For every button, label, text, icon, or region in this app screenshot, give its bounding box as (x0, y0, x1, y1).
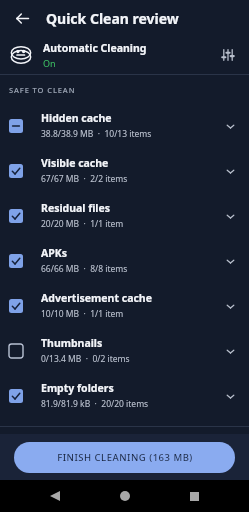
button[interactable]: Expand APKs (219, 250, 241, 272)
staticText: Hidden cache (41, 111, 112, 125)
staticText: 20/20 MB · 1/1 item (41, 218, 124, 230)
button[interactable]: Select Empty folders (0, 373, 249, 418)
button[interactable]: Select Thumbnails (0, 328, 249, 373)
staticText: SAFE TO CLEAN (9, 85, 76, 95)
button[interactable]: Home (111, 482, 139, 510)
button[interactable]: Recents (180, 482, 208, 510)
staticText: On (43, 57, 56, 69)
button[interactable]: Select Empty folders (9, 389, 23, 403)
staticText: Quick Clean review (46, 9, 179, 28)
button[interactable]: Select Advertisement cache (0, 283, 249, 328)
staticText: 38.8/38.9 MB · 10/13 items (41, 128, 152, 140)
button[interactable]: Select APKs (9, 254, 23, 268)
staticText: Empty folders (41, 381, 114, 395)
button[interactable]: Select Residual files (9, 209, 23, 223)
button[interactable]: Select APKs (0, 238, 249, 283)
button[interactable]: Settings (215, 42, 241, 68)
button[interactable]: Expand Hidden cache (219, 115, 241, 137)
button[interactable]: Expand Thumbnails (219, 340, 241, 362)
staticText: Residual files (41, 201, 111, 215)
button[interactable]: Select Hidden cache (9, 119, 23, 133)
staticText: Thumbnails (41, 336, 103, 350)
button[interactable]: Select Thumbnails (9, 344, 23, 358)
staticText: Automatic Cleaning (43, 41, 147, 55)
button[interactable]: Select Advertisement cache (9, 299, 23, 313)
staticText: 81.9/81.9 kB · 20/20 items (41, 398, 149, 410)
button[interactable]: Back (8, 4, 36, 32)
button[interactable]: Select Hidden cache (0, 103, 249, 148)
button[interactable]: Expand Empty folders (219, 385, 241, 407)
staticText: 66/66 MB · 8/8 items (41, 263, 128, 275)
button[interactable]: Select Visible cache (0, 148, 249, 193)
staticText: APKs (41, 246, 68, 260)
staticText: FINISH CLEANING (163 MB) (57, 451, 193, 464)
button[interactable]: Select Residual files (0, 193, 249, 238)
button[interactable]: Automatic Cleaning (0, 36, 249, 74)
staticText: Advertisement cache (41, 291, 152, 305)
staticText: Visible cache (41, 156, 109, 170)
button[interactable]: Expand Advertisement cache (219, 295, 241, 317)
button[interactable]: Expand Residual files (219, 205, 241, 227)
staticText: 10/10 MB · 1/1 item (41, 308, 124, 320)
button[interactable]: FINISH CLEANING (163 MB) (14, 442, 235, 473)
button[interactable]: Select Visible cache (9, 164, 23, 178)
staticText: 0/13.4 MB · 0/2 items (41, 353, 130, 365)
staticText: 67/67 MB · 2/2 items (41, 173, 128, 185)
button[interactable]: Back (41, 482, 69, 510)
button[interactable]: Expand Visible cache (219, 160, 241, 182)
